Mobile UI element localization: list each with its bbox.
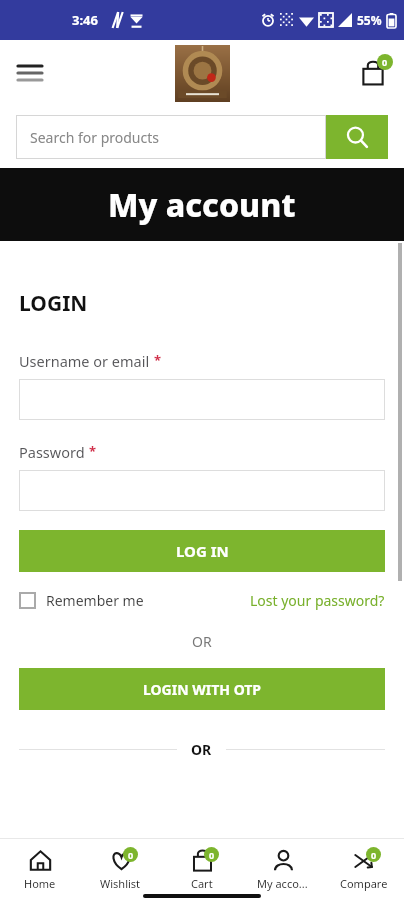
staticText: * [154,351,162,369]
button[interactable] [19,379,385,420]
staticText: LOGIN WITH OTP [143,680,262,699]
button[interactable]: My acco... [242,838,323,900]
staticText: Lost your password? [250,591,385,610]
staticText: 55% [357,12,382,28]
staticText: 0 [371,849,377,861]
staticText: OR [191,740,212,759]
staticText: OR [192,632,212,651]
staticText: 3:46 [72,11,98,29]
staticText: Compare [340,876,388,891]
button[interactable]: LOG IN [19,530,385,572]
staticText: 0 [128,849,134,861]
staticText: Cart [191,876,213,891]
staticText: My account [108,183,296,227]
staticText: Search for products [30,128,159,147]
button[interactable]: Lost your password? [250,591,385,610]
staticText: Remember me [46,591,144,610]
staticText: Username or email [19,351,150,371]
button[interactable]: 0 [161,838,242,900]
button[interactable]: LOGIN WITH OTP [19,668,385,710]
staticText: Password [19,442,85,462]
staticText: LOGIN [19,289,88,318]
button[interactable]: Menu [10,53,50,93]
staticText: My acco... [257,876,308,891]
button[interactable]: Home [0,838,80,900]
button[interactable]: Search [326,115,388,159]
button[interactable]: Remember me [19,591,144,610]
button[interactable]: Cart [352,52,394,94]
button[interactable]: Logo [175,45,230,102]
staticText: * [89,442,97,460]
staticText: 0 [382,56,388,68]
button[interactable]: 0 [80,838,161,900]
button[interactable]: Search for products [16,115,326,159]
staticText: 0 [209,849,215,861]
button[interactable]: 0 [323,838,404,900]
staticText: Wishlist [100,876,141,891]
staticText: Home [24,876,56,891]
staticText: LOG IN [176,541,229,561]
button[interactable] [19,470,385,511]
